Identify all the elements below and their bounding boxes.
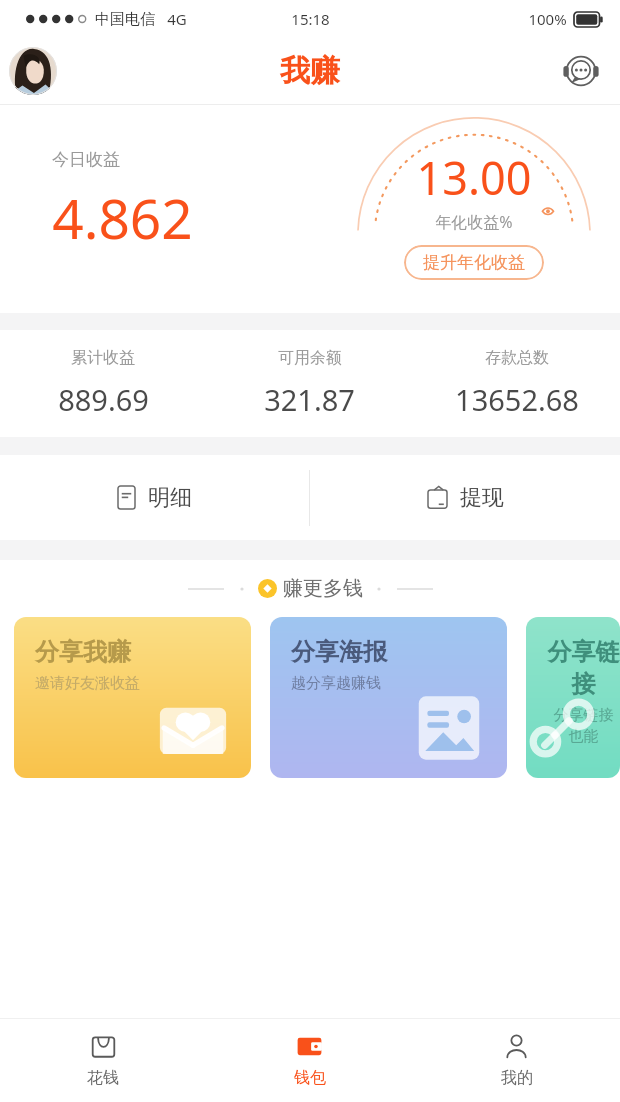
button[interactable]: 提升年化收益 [404, 245, 544, 280]
staticText: 今日收益 [52, 149, 120, 170]
staticText: 中国电信 [95, 10, 155, 29]
button[interactable]: 钱包 [206, 1019, 413, 1102]
button[interactable]: Customer service [559, 49, 603, 93]
staticText: 13.00 [416, 147, 532, 208]
staticText: 15:18 [291, 9, 330, 29]
button[interactable]: 累计收益 [0, 330, 206, 437]
staticText: 321.87 [264, 380, 355, 419]
button[interactable]: 分享海报 [270, 617, 507, 778]
staticText: 分享链接 [547, 637, 620, 699]
staticText: 100% [528, 9, 567, 29]
staticText: 分享海报 [291, 637, 387, 667]
staticText: 4G [167, 9, 187, 29]
staticText: 889.69 [58, 380, 149, 419]
staticText: 花钱 [87, 1068, 119, 1088]
staticText: 可用余额 [278, 348, 342, 368]
button[interactable]: 花钱 [0, 1019, 206, 1102]
staticText: 分享链接也能 [547, 706, 620, 746]
button[interactable]: 可用余额 [206, 330, 413, 437]
staticText: 提现 [460, 484, 504, 512]
staticText: 累计收益 [71, 348, 135, 368]
button[interactable]: 提现 [310, 455, 620, 540]
staticText: 我的 [501, 1068, 533, 1088]
staticText: 年化收益% [435, 211, 513, 233]
button[interactable]: 明细 [0, 455, 309, 540]
staticText: 明细 [148, 484, 192, 512]
staticText: 提升年化收益 [423, 252, 525, 273]
button[interactable]: 存款总数 [413, 330, 620, 437]
staticText: 13652.68 [455, 380, 579, 419]
staticText: 4.862 [52, 180, 193, 255]
staticText: 分享我赚 [35, 637, 131, 667]
staticText: 越分享越赚钱 [291, 674, 381, 693]
button[interactable]: Profile avatar [9, 47, 57, 95]
staticText: 我赚 [280, 52, 340, 90]
staticText: 邀请好友涨收益 [35, 674, 140, 693]
button[interactable]: 分享我赚 [14, 617, 251, 778]
button[interactable]: 我的 [413, 1019, 620, 1102]
staticText: 赚更多钱 [283, 576, 363, 601]
button[interactable]: 分享链接 [526, 617, 620, 778]
staticText: 存款总数 [485, 348, 549, 368]
staticText: 钱包 [294, 1068, 326, 1088]
